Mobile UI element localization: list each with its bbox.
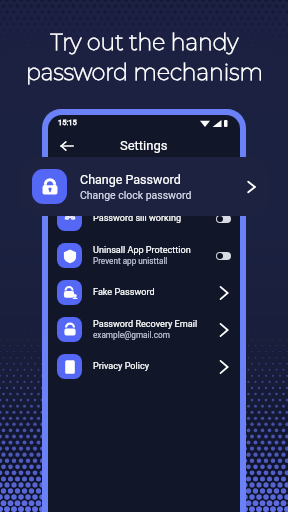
button[interactable]: Uninsall App Protecttion [48, 237, 240, 274]
button[interactable]: Change Password [19, 157, 270, 216]
staticText: Settings [120, 138, 168, 153]
staticText: Change clock password [80, 189, 192, 201]
staticText: example@gmail.com [93, 330, 170, 340]
button[interactable]: Open Privacy Policy [217, 360, 231, 374]
staticText: Uninsall App Protecttion [93, 245, 191, 256]
staticText: Change Password [80, 172, 181, 187]
button[interactable]: Back [56, 135, 78, 157]
button[interactable]: Toggle [216, 215, 231, 223]
button[interactable]: Password sill working [48, 200, 240, 237]
staticText: Prevent app unisttall [93, 256, 168, 266]
staticText: Privacy Policy [93, 361, 149, 372]
staticText: Try out the handy password mechanism [26, 29, 263, 85]
button[interactable]: Password Recovery Email [48, 311, 240, 348]
staticText: Password sill working [93, 213, 182, 224]
button[interactable]: Fake Password [48, 274, 240, 311]
button[interactable]: Open Password Recovery Email [217, 323, 231, 337]
staticText: Password Recovery Email [93, 319, 198, 330]
button[interactable]: Toggle [216, 252, 231, 260]
staticText: Fake Password [93, 287, 155, 298]
button[interactable]: Open Fake Password [217, 286, 231, 300]
staticText: 15:15 [58, 118, 77, 127]
button[interactable]: Privacy Policy [48, 348, 240, 385]
